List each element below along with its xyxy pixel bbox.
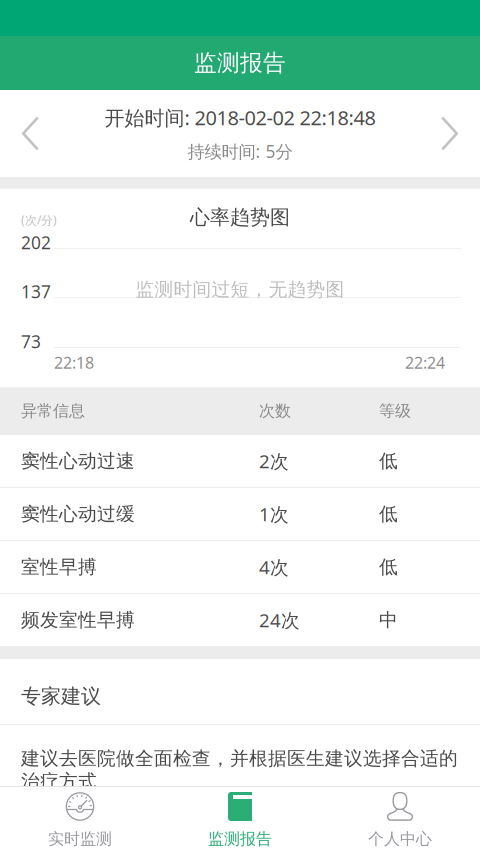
button[interactable]: 下一条记录	[426, 90, 480, 177]
staticText: 22:18	[54, 352, 94, 373]
button[interactable]: 窦性心动过缓	[0, 488, 480, 541]
staticText: 异常信息	[21, 401, 85, 421]
staticText: 专家建议	[21, 684, 101, 709]
staticText: 202	[21, 231, 51, 254]
staticText: 监测时间过短，无趋势图	[135, 278, 344, 301]
staticText: 等级	[379, 401, 411, 421]
staticText: 次数	[259, 401, 291, 421]
staticText: 持续时间: 5分	[187, 140, 292, 163]
button[interactable]: 窦性心动过速	[0, 435, 480, 488]
staticText: 窦性心动过缓	[21, 502, 135, 525]
staticText: 频发室性早搏	[21, 608, 135, 631]
staticText: 中	[379, 608, 398, 631]
staticText: 实时监测	[48, 829, 112, 849]
staticText: 低	[379, 502, 398, 525]
button[interactable]: 实时监测	[0, 787, 160, 853]
staticText: 2次	[259, 449, 289, 473]
staticText: 24次	[259, 608, 300, 632]
staticText: 1次	[259, 502, 289, 526]
staticText: (次/分)	[21, 212, 57, 228]
staticText: 低	[379, 555, 398, 578]
staticText: 22:24	[405, 352, 445, 373]
staticText: 137	[21, 280, 51, 303]
staticText: 个人中心	[368, 829, 432, 849]
staticText: 低	[379, 449, 398, 472]
staticText: 监测报告	[208, 829, 272, 849]
button[interactable]: 室性早搏	[0, 541, 480, 594]
staticText: 室性早搏	[21, 555, 97, 578]
staticText: 监测报告	[194, 49, 286, 77]
staticText: 4次	[259, 555, 289, 579]
button[interactable]: 频发室性早搏	[0, 594, 480, 647]
button[interactable]: 个人中心	[320, 787, 480, 853]
staticText: 建议去医院做全面检查，并根据医生建议选择合适的治疗方式	[21, 747, 458, 793]
staticText: 开始时间: 2018-02-02 22:18:48	[104, 104, 375, 131]
staticText: 心率趋势图	[190, 205, 290, 230]
staticText: 73	[21, 330, 41, 353]
staticText: 窦性心动过速	[21, 449, 135, 472]
button[interactable]: 监测报告	[160, 787, 320, 853]
button[interactable]: 上一条记录	[0, 90, 54, 177]
